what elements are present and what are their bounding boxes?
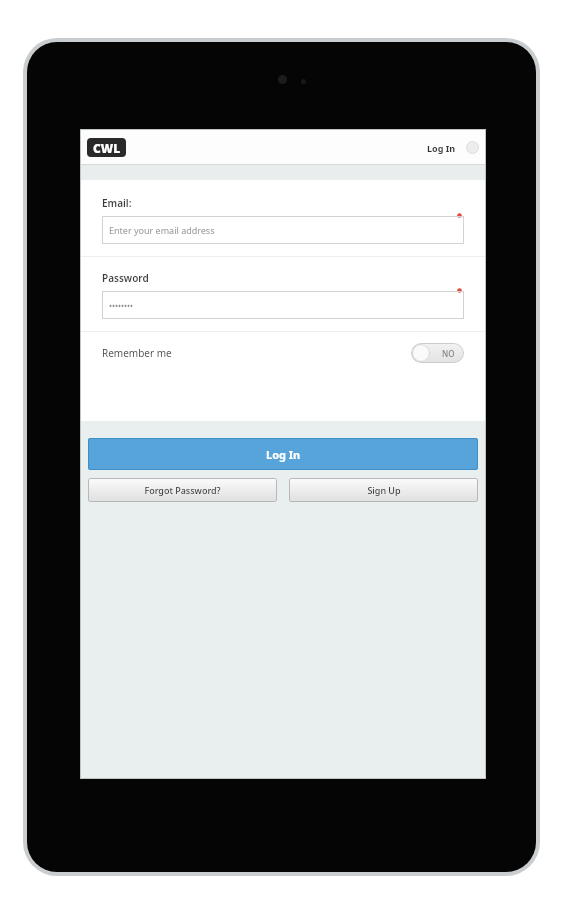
other: Account	[466, 141, 479, 154]
staticText: Enter your email address	[109, 224, 215, 236]
staticText: NO	[442, 348, 455, 359]
staticText: Sign Up	[367, 484, 401, 496]
button[interactable]: Log In	[427, 141, 479, 154]
button[interactable]: Enter your email address	[102, 216, 464, 244]
button[interactable]: Log In	[88, 438, 478, 470]
button[interactable]: Forgot Password?	[88, 478, 277, 502]
button[interactable]: CWL Home	[87, 138, 126, 157]
staticText: Log In	[427, 142, 456, 154]
staticText: CWL	[93, 140, 121, 156]
button[interactable]: ••••••••	[102, 291, 464, 319]
staticText: Forgot Password?	[144, 484, 221, 496]
staticText: Remember me	[102, 346, 172, 360]
button[interactable]: Sign Up	[289, 478, 478, 502]
staticText: Email:	[102, 196, 132, 210]
button[interactable]: Remember me toggle, off	[411, 343, 464, 363]
button[interactable]: Remember me	[80, 332, 486, 374]
staticText: Password	[102, 271, 149, 285]
staticText: Log In	[266, 447, 301, 462]
staticText: ••••••••	[109, 300, 134, 311]
